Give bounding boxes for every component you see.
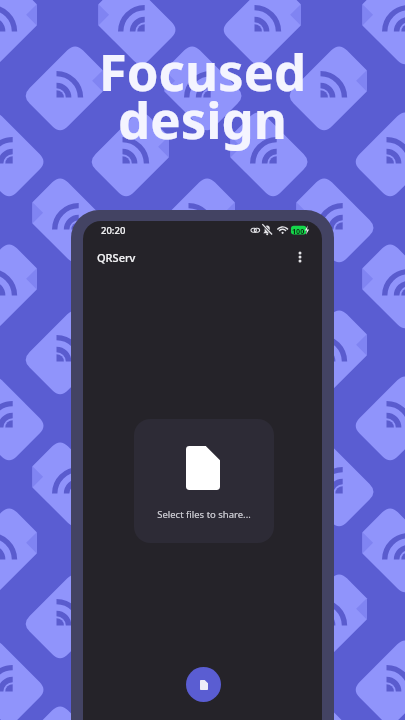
button[interactable]: More options [289, 246, 311, 268]
button[interactable]: Select files to share... [134, 419, 274, 543]
staticText: Focused design [0, 36, 405, 154]
staticText: Select files to share... [134, 508, 274, 521]
staticText: QRServ [97, 250, 136, 265]
button[interactable]: Select file [186, 667, 221, 702]
staticText: 20:20 [101, 224, 126, 237]
staticText: 100 [292, 226, 305, 236]
